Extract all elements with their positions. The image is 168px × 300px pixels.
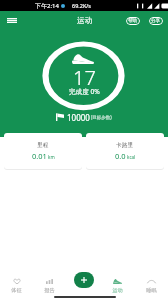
staticText: 完成度 0% bbox=[69, 87, 100, 96]
staticText: (目标步数) bbox=[91, 114, 112, 120]
staticText: 分享 bbox=[151, 18, 161, 24]
button[interactable]: Add bbox=[74, 272, 94, 288]
button[interactable]: 卡路里 bbox=[86, 133, 164, 169]
staticText: 69.2K/s bbox=[72, 2, 91, 9]
button[interactable]: 里程 bbox=[4, 133, 82, 169]
staticText: 帮助 bbox=[128, 18, 138, 24]
staticText: 下午2:14 bbox=[35, 2, 59, 10]
staticText: 17 bbox=[73, 64, 96, 86]
staticText: 10000 bbox=[67, 112, 90, 122]
button[interactable]: 报告 bbox=[33, 276, 66, 299]
staticText: 里程 bbox=[37, 141, 49, 148]
staticText: 卡路里 bbox=[116, 141, 134, 148]
staticText: kcal bbox=[127, 154, 136, 160]
button[interactable]: 运动 bbox=[100, 276, 134, 299]
staticText: 运动 bbox=[112, 287, 123, 294]
staticText: 0.0 bbox=[115, 151, 126, 161]
button[interactable]: Menu bbox=[2, 11, 22, 30]
button[interactable]: 睡眠 bbox=[134, 276, 168, 299]
staticText: 报告 bbox=[44, 287, 55, 294]
staticText: 体征 bbox=[11, 287, 22, 294]
staticText: km bbox=[48, 154, 55, 160]
staticText: 0.01 bbox=[32, 151, 47, 161]
button[interactable]: 体征 bbox=[0, 276, 33, 299]
staticText: 睡眠 bbox=[146, 287, 157, 294]
button[interactable]: 帮助 bbox=[126, 17, 140, 25]
button[interactable]: 分享 bbox=[149, 17, 163, 25]
staticText: 运动 bbox=[77, 16, 92, 25]
